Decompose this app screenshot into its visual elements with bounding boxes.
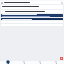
button[interactable]: Profile [48, 61, 64, 64]
button[interactable]: Saved [32, 61, 48, 64]
button[interactable]: Explore [16, 61, 32, 64]
button[interactable] [1, 14, 63, 17]
button[interactable] [1, 18, 63, 20]
button[interactable] [1, 10, 63, 13]
button[interactable]: Home [0, 61, 16, 64]
button[interactable] [1, 5, 63, 9]
button[interactable]: Create new item [60, 57, 63, 60]
button[interactable]: Search [61, 2, 63, 4]
